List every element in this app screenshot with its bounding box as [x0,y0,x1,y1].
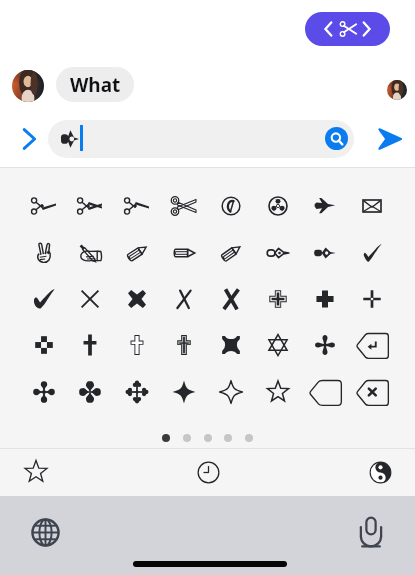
button[interactable]: Symbols [361,453,399,491]
button[interactable]: Left pointing pentagon [303,370,347,414]
button[interactable]: Heavy ballot x [209,277,253,321]
button[interactable]: Dictate [353,514,389,550]
button[interactable]: White scissors [162,184,206,228]
button[interactable]: Outlined greek cross [256,277,300,321]
button[interactable]: Telephone location sign [209,184,253,228]
button[interactable]: Envelope [350,184,394,228]
button[interactable]: Switch keyboard [27,514,63,550]
button[interactable]: Open centre cross [350,277,394,321]
button[interactable]: Delete key [350,370,394,414]
button[interactable]: Black nib [303,231,347,275]
button[interactable]: Latin cross [68,323,112,367]
button[interactable]: Heavy multiplication x [115,277,159,321]
button[interactable]: Send [371,120,409,158]
button[interactable]: Airplane [303,184,347,228]
button[interactable]: Pencil [115,231,159,275]
button[interactable]: Expand toolbar [10,120,48,158]
button[interactable]: Four teardrop spoked asterisk [115,370,159,414]
button[interactable]: Maltese cross [209,323,253,367]
button[interactable]: Open centre four pointed star [209,370,253,414]
button[interactable] [305,12,390,46]
button[interactable]: Recently used [189,453,227,491]
button[interactable]: White star [256,370,300,414]
button[interactable]: Favorites [17,453,55,491]
button[interactable]: Shadowed latin cross [162,323,206,367]
button[interactable]: Shadowed white cross [22,323,66,367]
button[interactable]: Enter symbol [350,323,394,367]
button[interactable]: Ballot x [162,277,206,321]
button[interactable]: Four pointed star [162,370,206,414]
button[interactable]: Black scissors [68,184,112,228]
button[interactable]: Search [48,120,354,158]
button[interactable]: Star of David [256,323,300,367]
button[interactable]: Biohazard [256,184,300,228]
staticText: What [70,72,121,98]
button[interactable]: Heavy greek cross [303,277,347,321]
button[interactable]: Multiplication x [68,277,112,321]
button[interactable]: Lower blade scissors [115,184,159,228]
button[interactable]: Four club spoked asterisk [22,370,66,414]
button[interactable]: What [56,67,134,102]
button[interactable]: Writing hand [68,231,112,275]
button[interactable]: Search [325,127,348,150]
button[interactable]: Four balloon spoked asterisk [303,323,347,367]
button[interactable]: Shamrock [68,370,112,414]
button[interactable]: Lower left pencil [209,231,253,275]
button[interactable]: Heavy check mark [22,277,66,321]
button[interactable]: Upper blade scissors [22,184,66,228]
button[interactable]: Outlined latin cross [115,323,159,367]
button[interactable]: Pencil right [162,231,206,275]
button[interactable]: White nib [256,231,300,275]
button[interactable]: Check mark [350,231,394,275]
button[interactable]: Victory hand [22,231,66,275]
